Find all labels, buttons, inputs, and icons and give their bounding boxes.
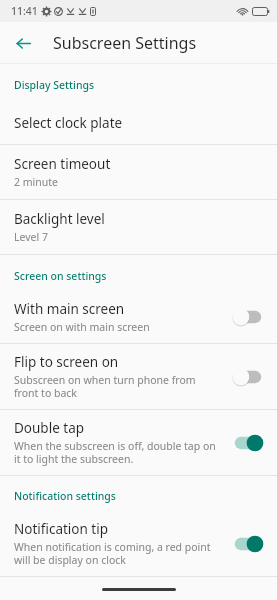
staticText: When notification is coming, a red point… [14,540,221,567]
button[interactable]: Select clock plate [0,102,277,144]
button[interactable]: Screen timeout [0,145,277,199]
button[interactable]: Double tap [0,410,277,475]
button[interactable]: With main screen [0,291,277,343]
staticText: With main screen [14,300,125,318]
staticText: When the subscreen is off, double tap on… [14,439,221,466]
staticText: Display Settings [14,78,277,92]
staticText: Backlight level [14,210,105,228]
button[interactable]: Backlight level [0,200,277,254]
staticText: Double tap [14,419,85,437]
staticText: Select clock plate [14,114,123,132]
staticText: Flip to screen on [14,353,119,371]
staticText: Subscreen Settings [53,32,197,54]
button[interactable]: Back [10,30,36,56]
staticText: Screen on settings [14,269,277,283]
staticText: 11:41 [11,4,38,18]
staticText: 2 minute [14,175,58,189]
staticText: Screen timeout [14,155,111,173]
staticText: Screen on with main screen [14,320,150,334]
staticText: Subscreen on when turn phone from front … [14,373,221,400]
button[interactable]: Notification tip [0,511,277,576]
staticText: Notification tip [14,520,109,538]
button[interactable]: Flip to screen on [0,344,277,409]
staticText: Level 7 [14,230,48,244]
staticText: Notification settings [14,489,277,503]
